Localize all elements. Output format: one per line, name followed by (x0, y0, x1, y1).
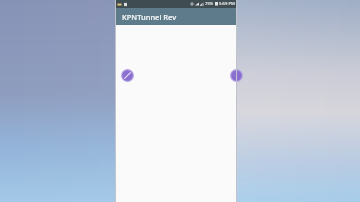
button[interactable]: KPNTunnel Rev (115, 8, 237, 25)
staticText: KPNTunnel Rev (122, 12, 177, 22)
button[interactable]: Open drawer handle (121, 69, 134, 82)
button[interactable]: Open side panel handle (230, 69, 243, 82)
staticText: 5:59 PM (219, 1, 235, 7)
staticText: 75% (205, 1, 214, 7)
